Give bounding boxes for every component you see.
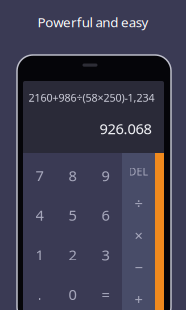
button[interactable]: 1: [23, 235, 56, 274]
staticText: =: [101, 285, 109, 304]
staticText: 9: [101, 166, 109, 185]
staticText: 7: [35, 166, 43, 185]
button[interactable]: 6: [89, 195, 122, 235]
button[interactable]: 7: [23, 156, 56, 195]
staticText: 5: [68, 205, 76, 225]
staticText: 2160+986÷(58×250)-1,234: [28, 90, 154, 105]
staticText: ÷: [134, 194, 142, 213]
button[interactable]: −: [122, 251, 155, 283]
button[interactable]: 0: [56, 274, 89, 310]
staticText: 4: [35, 205, 43, 225]
button[interactable]: =: [89, 274, 122, 310]
staticText: Powerful and easy: [37, 13, 149, 31]
staticText: 0: [68, 285, 76, 304]
staticText: 3: [101, 245, 109, 264]
staticText: 1: [35, 245, 43, 264]
staticText: 2: [68, 245, 76, 264]
staticText: 8: [68, 166, 76, 185]
button[interactable]: DEL: [122, 155, 155, 187]
staticText: .: [37, 285, 41, 304]
staticText: 926.068: [99, 119, 151, 138]
staticText: 6: [101, 205, 109, 225]
button[interactable]: 9: [89, 156, 122, 195]
staticText: −: [134, 258, 142, 277]
button[interactable]: 5: [56, 195, 89, 235]
staticText: ×: [134, 226, 142, 245]
button[interactable]: 8: [56, 156, 89, 195]
button[interactable]: ×: [122, 219, 155, 251]
button[interactable]: 4: [23, 195, 56, 235]
staticText: DEL: [128, 164, 148, 178]
button[interactable]: 2: [56, 235, 89, 274]
staticText: +: [134, 290, 142, 309]
button[interactable]: 3: [89, 235, 122, 274]
button[interactable]: +: [122, 283, 155, 310]
button[interactable]: ÷: [122, 187, 155, 219]
button[interactable]: .: [23, 274, 56, 310]
